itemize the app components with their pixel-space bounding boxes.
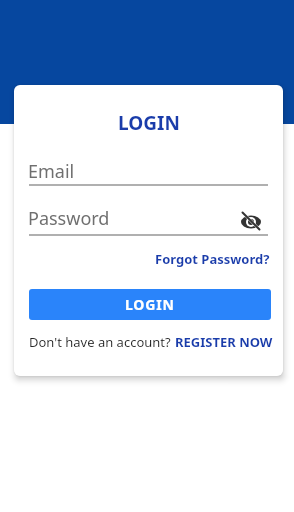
staticText: Email xyxy=(28,159,75,184)
staticText: LOGIN xyxy=(118,110,180,136)
button[interactable] xyxy=(240,211,262,233)
button[interactable]: LOGIN xyxy=(29,289,271,320)
button[interactable]: REGISTER NOW xyxy=(175,333,273,351)
staticText: Password xyxy=(28,206,110,231)
staticText: Don't have an account? xyxy=(29,333,171,351)
staticText: LOGIN xyxy=(125,295,175,314)
button[interactable]: Forgot Password? xyxy=(155,250,270,268)
staticText: REGISTER NOW xyxy=(175,333,273,351)
staticText: Forgot Password? xyxy=(155,250,270,268)
